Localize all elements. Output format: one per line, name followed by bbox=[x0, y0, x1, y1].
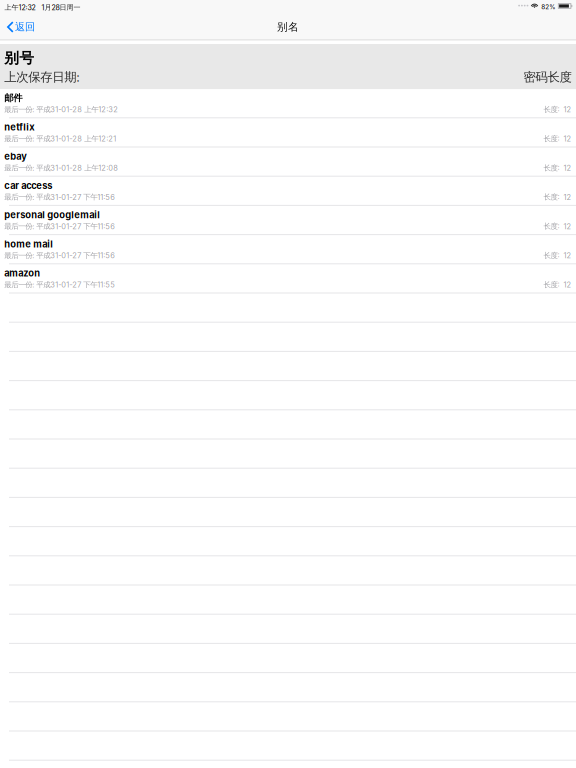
staticText: 密码长度 bbox=[523, 69, 571, 85]
staticText: 最后一份: 平成31-01-28 上午12:21 bbox=[4, 134, 116, 143]
staticText: 返回 bbox=[15, 21, 35, 33]
staticText: 邮件 bbox=[4, 92, 22, 104]
staticText: 长度: 12 bbox=[543, 163, 571, 173]
staticText: home mail bbox=[4, 238, 53, 250]
staticText: personal googlemail bbox=[4, 209, 100, 220]
staticText: 最后一份: 平成31-01-27 下午11:56 bbox=[4, 192, 115, 202]
staticText: 82% bbox=[541, 3, 555, 11]
staticText: 长度: 12 bbox=[543, 280, 571, 289]
button[interactable]: car access bbox=[0, 177, 576, 206]
staticText: 上次保存日期: bbox=[4, 69, 80, 85]
staticText: ebay bbox=[4, 151, 27, 162]
staticText: 长度: 12 bbox=[543, 192, 571, 202]
button[interactable]: netflix bbox=[0, 118, 576, 147]
staticText: 别名 bbox=[277, 20, 299, 34]
staticText: 长度: 12 bbox=[543, 251, 571, 260]
button[interactable]: 返回 bbox=[0, 16, 41, 38]
button[interactable]: home mail bbox=[0, 235, 576, 264]
button[interactable]: ebay bbox=[0, 147, 576, 177]
staticText: amazon bbox=[4, 268, 40, 279]
button[interactable]: personal googlemail bbox=[0, 206, 576, 235]
staticText: 上午12:32 1月28日周一 bbox=[4, 3, 80, 12]
staticText: 别号 bbox=[4, 49, 34, 67]
staticText: netflix bbox=[4, 122, 34, 133]
staticText: 最后一份: 平成31-01-27 下午11:56 bbox=[4, 222, 115, 231]
staticText: car access bbox=[4, 180, 52, 191]
button[interactable]: amazon bbox=[0, 264, 576, 293]
staticText: 长度: 12 bbox=[543, 134, 571, 143]
staticText: 最后一份: 平成31-01-28 上午12:32 bbox=[4, 105, 118, 114]
staticText: 最后一份: 平成31-01-27 下午11:56 bbox=[4, 251, 115, 260]
button[interactable]: 邮件 bbox=[0, 89, 576, 118]
staticText: 长度: 12 bbox=[543, 105, 571, 114]
staticText: 长度: 12 bbox=[543, 222, 571, 231]
staticText: 最后一份: 平成31-01-28 上午12:08 bbox=[4, 163, 118, 173]
staticText: 最后一份: 平成31-01-27 下午11:55 bbox=[4, 280, 115, 289]
